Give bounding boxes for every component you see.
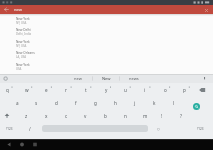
button[interactable]: w [22, 86, 32, 94]
staticText: news [129, 76, 139, 81]
button[interactable]: s [31, 99, 41, 107]
button[interactable]: r [61, 86, 71, 94]
button[interactable]: o [160, 86, 170, 94]
staticText: e [45, 87, 48, 93]
button[interactable]: ? [176, 112, 186, 120]
button[interactable]: c [61, 112, 71, 120]
staticText: NY, USA [16, 44, 27, 48]
staticText: q [6, 87, 9, 93]
button[interactable] [202, 76, 207, 81]
button[interactable]: x [41, 112, 51, 120]
staticText: c [65, 113, 68, 119]
button[interactable]: New York [16, 39, 106, 50]
staticText: Delhi, India [16, 32, 31, 36]
button[interactable] [31, 141, 39, 148]
button[interactable] [2, 5, 11, 14]
button[interactable]: g [90, 99, 100, 107]
staticText: i [144, 87, 146, 93]
button[interactable]: New [93, 74, 119, 83]
button[interactable]: ?123 [195, 125, 205, 133]
staticText: k [153, 100, 156, 106]
staticText: ?123 [197, 127, 204, 131]
staticText: m [143, 113, 148, 119]
staticText: NY, USA [16, 21, 27, 25]
staticText: t [85, 87, 87, 93]
button[interactable] [3, 76, 8, 81]
button[interactable]: New Delhi [16, 27, 106, 38]
staticText: h [114, 100, 117, 106]
staticText: New Orleans [16, 51, 35, 55]
button[interactable]: i [140, 86, 150, 94]
button[interactable]: New York [16, 62, 106, 73]
button[interactable]: t [81, 86, 91, 94]
staticText: New York [16, 40, 30, 44]
staticText: r [65, 87, 67, 93]
button[interactable]: a [12, 99, 22, 107]
staticText: New Delhi [16, 28, 31, 32]
button[interactable] [5, 141, 13, 148]
staticText: / [29, 126, 31, 132]
staticText: x [45, 113, 48, 119]
staticText: l [173, 100, 175, 106]
button[interactable]: ?123 [4, 125, 14, 133]
staticText: a [16, 100, 19, 106]
staticText: n [124, 113, 127, 119]
staticText: ! [161, 113, 163, 119]
staticText: b [104, 113, 107, 119]
button[interactable]: j [130, 99, 140, 107]
staticText: y [105, 87, 108, 93]
button[interactable]: New York [16, 16, 106, 27]
button[interactable]: b [100, 112, 110, 120]
button[interactable]: ○ [153, 125, 163, 133]
staticText: ?123 [6, 127, 13, 131]
staticText: s [35, 100, 38, 106]
button[interactable]: n [120, 112, 130, 120]
staticText: New [102, 76, 111, 81]
button[interactable]: p [179, 86, 189, 94]
staticText: o [164, 87, 167, 93]
staticText: ? [180, 113, 182, 119]
staticText: g [94, 100, 97, 106]
button[interactable]: f [71, 99, 81, 107]
button[interactable] [18, 141, 26, 148]
button[interactable]: u [120, 86, 130, 94]
staticText: w [25, 87, 29, 93]
staticText: ○ [157, 127, 160, 131]
staticText: New York [16, 17, 30, 21]
button[interactable]: e [41, 86, 51, 94]
staticText: v [84, 113, 87, 119]
button[interactable]: d [51, 99, 61, 107]
button[interactable]: l [169, 99, 179, 107]
staticText: f [75, 100, 77, 106]
button[interactable]: new [65, 74, 91, 83]
button[interactable]: news [121, 74, 147, 83]
button[interactable]: q [2, 86, 12, 94]
staticText: j [134, 100, 136, 106]
staticText: New York [16, 63, 30, 67]
button[interactable]: New Orleans [16, 50, 106, 61]
button[interactable] [203, 7, 209, 13]
button[interactable]: k [149, 99, 159, 107]
staticText: new [14, 7, 22, 12]
button[interactable] [193, 103, 200, 110]
button[interactable]: h [110, 99, 120, 107]
button[interactable]: z [21, 112, 31, 120]
staticText: USA [16, 67, 22, 71]
staticText: u [124, 87, 127, 93]
button[interactable]: / [25, 125, 35, 133]
staticText: p [183, 87, 186, 93]
button[interactable]: v [80, 112, 90, 120]
staticText: d [55, 100, 58, 106]
staticText: LA, USA [16, 55, 27, 59]
staticText: new [74, 76, 82, 81]
staticText: z [25, 113, 28, 119]
button[interactable]: ! [157, 112, 167, 120]
button[interactable]: m [140, 112, 150, 120]
button[interactable]: y [101, 86, 111, 94]
